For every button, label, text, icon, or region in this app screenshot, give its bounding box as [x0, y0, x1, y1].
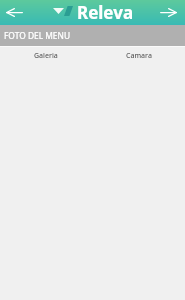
- staticText: Galeria: [34, 51, 58, 61]
- button[interactable]: Galeria: [0, 47, 92, 64]
- button[interactable]: Sort options: [49, 0, 67, 25]
- button[interactable]: Camara: [92, 47, 185, 64]
- staticText: Camara: [126, 51, 152, 61]
- staticText: Releva: [77, 1, 134, 24]
- button[interactable]: Back: [0, 0, 28, 25]
- button[interactable]: Forward: [157, 0, 185, 25]
- staticText: FOTO DEL MENU: [4, 30, 71, 41]
